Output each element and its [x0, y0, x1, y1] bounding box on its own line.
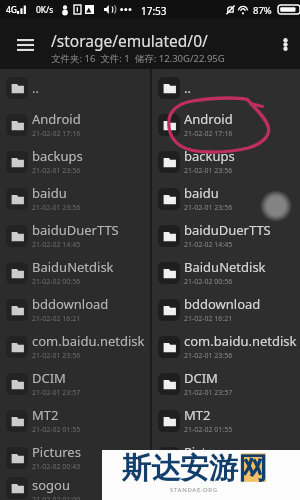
staticText: backups — [184, 147, 235, 165]
staticText: MT2 — [32, 406, 59, 424]
staticText: 17:53 — [141, 4, 167, 18]
staticText: bddownload — [32, 295, 109, 313]
staticText: DCIM — [184, 369, 218, 387]
staticText: 21-02-02 00:43 — [32, 462, 81, 472]
button[interactable]: Pictures — [152, 439, 300, 476]
staticText: 21-02-02 14:45 — [32, 240, 81, 250]
button[interactable]: Pictures — [0, 439, 150, 476]
staticText: Pictures — [32, 443, 81, 461]
button[interactable]: sogou — [0, 476, 150, 500]
button[interactable]: backups — [0, 143, 150, 180]
button[interactable]: sogou — [152, 476, 300, 500]
staticText: BaiduNetdisk — [184, 258, 266, 276]
button[interactable]: MT2 — [152, 402, 300, 439]
button[interactable]: bddownload — [152, 291, 300, 328]
button[interactable]: DCIM — [0, 365, 150, 402]
staticText: com.baidu.netdisk — [32, 332, 145, 350]
staticText: com.baidu.netdisk — [184, 332, 297, 350]
staticText: 文件夹: 16 文件: 1 储存: 12.30G/22.95G — [51, 52, 225, 65]
button[interactable]: .. — [0, 69, 150, 106]
staticText: /storage/emulated/0/ — [51, 30, 208, 51]
staticText: sogou — [32, 476, 70, 494]
button[interactable]: .. — [152, 69, 300, 106]
button[interactable]: baiduDuerTTS — [152, 217, 300, 254]
staticText: 21-02-01 23:57 — [32, 388, 81, 398]
button[interactable]: BaiduNetdisk — [0, 254, 150, 291]
button[interactable]: bddownload — [0, 291, 150, 328]
staticText: sogou — [184, 476, 222, 494]
staticText: Android — [32, 110, 81, 128]
staticText: 87% — [253, 4, 272, 17]
staticText: 21-02-01 23:56 — [184, 351, 233, 361]
staticText: baiduDuerTTS — [184, 221, 271, 239]
staticText: backups — [32, 147, 83, 165]
staticText: baidu — [184, 184, 219, 202]
staticText: 21-02-02 16:21 — [184, 314, 233, 324]
staticText: 21-02-02 16:21 — [32, 314, 81, 324]
staticText: .. — [184, 79, 191, 97]
button[interactable]: BaiduNetdisk — [152, 254, 300, 291]
button[interactable]: Android — [0, 106, 150, 143]
staticText: baidu — [32, 184, 67, 202]
button[interactable]: com.baidu.netdisk — [0, 328, 150, 365]
button[interactable]: baidu — [0, 180, 150, 217]
staticText: 21-02-01 23:56 — [184, 203, 233, 213]
staticText: Pictures — [184, 443, 233, 461]
staticText: 21-02-02 17:16 — [32, 129, 81, 139]
staticText: MT2 — [184, 406, 211, 424]
button[interactable]: DCIM — [152, 365, 300, 402]
button[interactable]: More options — [270, 19, 300, 69]
staticText: 21-02-02 00:56 — [32, 277, 81, 287]
staticText: 21-02-02 01:55 — [32, 425, 81, 435]
staticText: Android — [184, 110, 233, 128]
button[interactable]: Open navigation menu — [0, 19, 46, 69]
staticText: 21-02-02 17:16 — [184, 129, 233, 139]
button[interactable]: MT2 — [0, 402, 150, 439]
staticText: DCIM — [32, 369, 66, 387]
staticText: 21-02-01 23:56 — [32, 203, 81, 213]
button[interactable]: Android — [152, 106, 300, 143]
staticText: 斯达安游网 — [122, 450, 267, 487]
staticText: baiduDuerTTS — [32, 221, 119, 239]
staticText: bddownload — [184, 295, 261, 313]
button[interactable]: baidu — [152, 180, 300, 217]
staticText: 4G — [6, 4, 18, 16]
staticText: 21-02-02 14:45 — [184, 240, 233, 250]
staticText: BaiduNetdisk — [32, 258, 114, 276]
button[interactable]: backups — [152, 143, 300, 180]
staticText: 0K/s — [36, 4, 54, 16]
staticText: .. — [32, 79, 39, 97]
staticText: 21-02-02 01:00 — [32, 495, 81, 500]
button[interactable]: com.baidu.netdisk — [152, 328, 300, 365]
staticText: 21-02-01 23:57 — [184, 388, 233, 398]
staticText: 21-02-01 23:56 — [184, 166, 233, 176]
staticText: 21-02-01 23:56 — [32, 351, 81, 361]
staticText: 21-02-01 23:56 — [32, 166, 81, 176]
staticText: STANDAE.ORG — [170, 486, 218, 494]
button[interactable]: baiduDuerTTS — [0, 217, 150, 254]
staticText: 21-02-02 00:43 — [184, 462, 233, 472]
staticText: 21-02-02 01:55 — [184, 425, 233, 435]
staticText: 21-02-02 00:56 — [184, 277, 233, 287]
button[interactable]: Scroll thumb — [260, 190, 292, 222]
